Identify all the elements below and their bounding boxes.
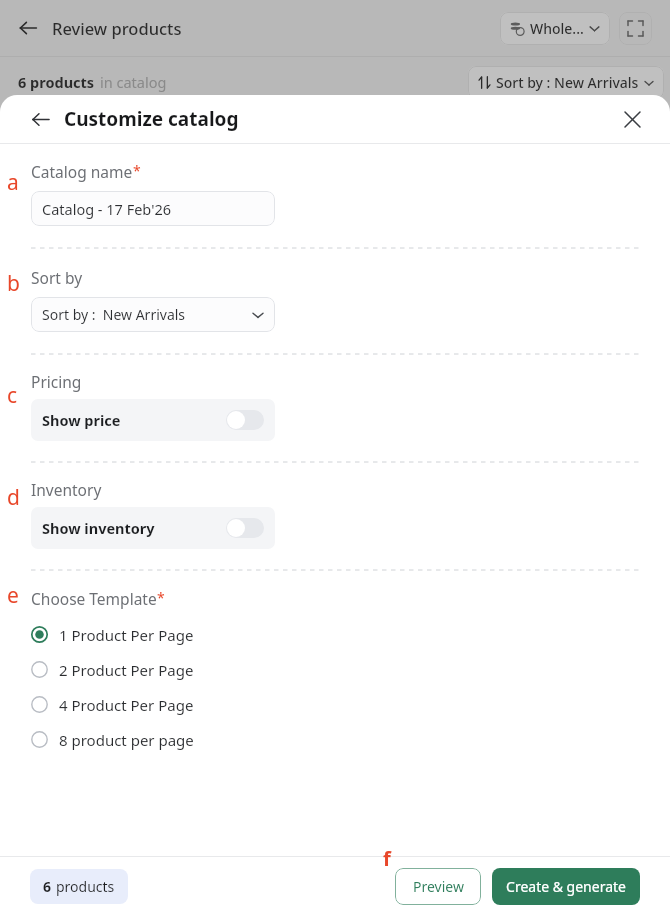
staticText: c — [7, 381, 18, 403]
button[interactable]: Catalog - 17 Feb'26 — [31, 191, 275, 226]
staticText: Catalog - 17 Feb'26 — [42, 199, 171, 219]
staticText: 8 product per page — [59, 730, 194, 750]
button[interactable]: Create & generate — [492, 868, 640, 905]
staticText: Customize catalog — [64, 106, 239, 132]
staticText: Preview — [413, 877, 464, 896]
staticText: b — [7, 269, 20, 291]
staticText: 2 Product Per Page — [59, 660, 194, 680]
staticText: Sort by : New Arrivals — [496, 73, 639, 92]
staticText: Sort by : New Arrivals — [42, 305, 186, 324]
button[interactable]: Close — [619, 106, 645, 132]
button[interactable]: Preview — [395, 868, 481, 905]
button[interactable]: Back — [28, 107, 52, 131]
button[interactable]: 2 Product Per Page — [0, 652, 670, 687]
staticText: products — [56, 877, 115, 896]
staticText: d — [7, 483, 20, 505]
staticText: Pricing — [31, 371, 82, 392]
staticText: Create & generate — [506, 877, 626, 896]
button[interactable]: 8 product per page — [0, 722, 670, 757]
staticText: 1 Product Per Page — [59, 625, 194, 645]
staticText: f — [383, 845, 391, 872]
staticText: Catalog name — [31, 161, 133, 182]
staticText: Choose Template — [31, 588, 157, 609]
button[interactable]: 1 Product Per Page — [0, 617, 670, 652]
staticText: 6 products — [18, 72, 95, 92]
staticText: a — [7, 168, 19, 190]
staticText: Review products — [52, 17, 182, 39]
button[interactable]: Sort by : New Arrivals — [31, 297, 275, 332]
staticText: Inventory — [31, 479, 102, 500]
staticText: in catalog — [100, 72, 167, 92]
button[interactable]: 6 — [30, 869, 128, 904]
staticText: Sort by — [31, 267, 83, 288]
staticText: Show inventory — [42, 518, 155, 538]
staticText: 6 — [43, 877, 52, 896]
staticText: * — [133, 161, 141, 180]
button[interactable]: Show inventory — [31, 507, 275, 549]
staticText: Whole... — [530, 19, 584, 38]
button[interactable]: Whole... — [500, 12, 610, 45]
button[interactable]: 4 Product Per Page — [0, 687, 670, 722]
staticText: Show price — [42, 410, 121, 430]
staticText: e — [7, 581, 19, 603]
button[interactable]: Scan — [619, 12, 652, 45]
button[interactable]: Sort by : New Arrivals — [468, 66, 664, 99]
staticText: * — [157, 588, 165, 607]
staticText: 4 Product Per Page — [59, 695, 194, 715]
button[interactable]: Show price — [31, 399, 275, 441]
